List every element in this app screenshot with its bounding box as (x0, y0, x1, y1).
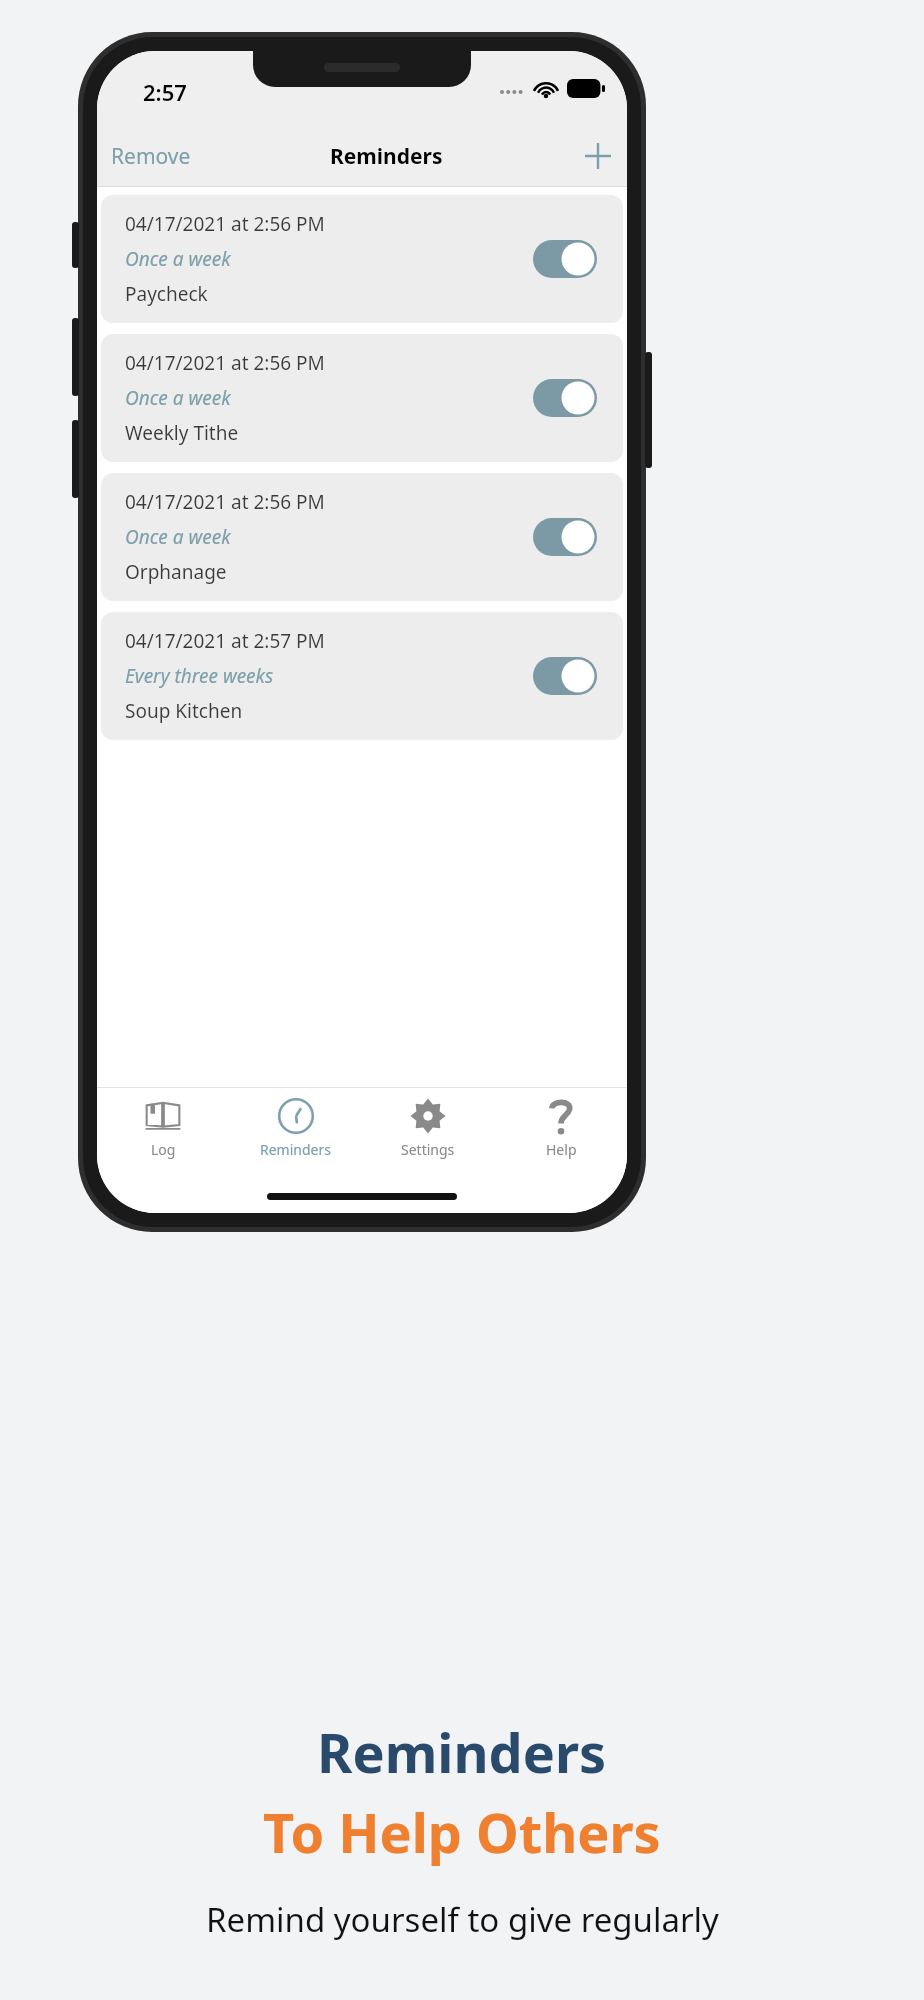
staticText: To Help Others (263, 1795, 661, 1869)
staticText: Remove (111, 142, 191, 171)
staticText: Paycheck (125, 281, 208, 307)
button[interactable]: Remove (97, 134, 205, 179)
button[interactable]: Toggle Weekly Tithe (531, 377, 599, 419)
staticText: Every three weeks (125, 663, 274, 689)
staticText: Soup Kitchen (125, 698, 243, 724)
staticText: Once a week (125, 385, 231, 411)
staticText: Weekly Tithe (125, 420, 239, 446)
staticText: 04/17/2021 at 2:56 PM (125, 350, 325, 376)
button[interactable]: 04/17/2021 at 2:56 PM (101, 195, 623, 323)
button[interactable]: Add reminder (569, 135, 627, 177)
button[interactable]: 04/17/2021 at 2:56 PM (101, 334, 623, 462)
button[interactable]: Reminders (229, 1087, 361, 1159)
staticText: Log (151, 1140, 176, 1159)
staticText: Reminders (260, 1140, 331, 1159)
button[interactable]: Toggle Orphanage (531, 516, 599, 558)
button[interactable]: 04/17/2021 at 2:56 PM (101, 473, 623, 601)
button[interactable]: Log (97, 1087, 229, 1159)
staticText: Settings (401, 1140, 455, 1159)
staticText: Once a week (125, 246, 231, 272)
staticText: 04/17/2021 at 2:56 PM (125, 211, 325, 237)
staticText: Remind yourself to give regularly (206, 1897, 719, 1942)
staticText: 2:57 (143, 77, 187, 107)
staticText: 04/17/2021 at 2:56 PM (125, 489, 325, 515)
button[interactable]: Toggle Paycheck (531, 238, 599, 280)
staticText: Reminders (317, 1715, 607, 1789)
button[interactable]: 04/17/2021 at 2:57 PM (101, 612, 623, 740)
staticText: Orphanage (125, 559, 227, 585)
button[interactable]: Help (494, 1087, 627, 1159)
staticText: 04/17/2021 at 2:57 PM (125, 628, 325, 654)
staticText: Help (546, 1140, 577, 1159)
button[interactable]: Toggle Soup Kitchen (531, 655, 599, 697)
staticText: Once a week (125, 524, 231, 550)
staticText: Reminders (330, 142, 443, 171)
button[interactable]: Settings (361, 1087, 494, 1159)
